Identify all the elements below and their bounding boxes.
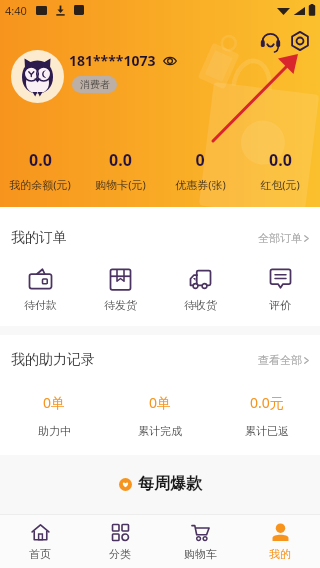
staticText: 分类 [109, 547, 131, 561]
staticText: 181****1073 [69, 51, 156, 70]
button[interactable]: 待付款 [0, 267, 80, 312]
staticText: 购物卡(元) [95, 177, 146, 192]
button[interactable]: 0.0 [240, 149, 320, 192]
staticText: 首页 [29, 547, 51, 561]
staticText: 我的余额(元) [9, 177, 71, 192]
staticText: 我的 [269, 547, 291, 561]
button[interactable]: 购物车 [160, 515, 240, 568]
button[interactable]: Toggle visibility [163, 54, 177, 68]
staticText: 累计完成 [138, 424, 182, 438]
staticText: 0.0 [109, 149, 132, 171]
staticText: 助力中 [38, 424, 71, 438]
staticText: 每周爆款 [138, 474, 202, 494]
button[interactable]: 分类 [80, 515, 160, 568]
button[interactable]: 0.0 [80, 149, 160, 192]
staticText: 0单 [149, 393, 172, 412]
staticText: 0单 [43, 393, 66, 412]
button[interactable]: 评价 [240, 267, 320, 312]
button[interactable]: Customer service [259, 30, 282, 53]
button[interactable]: 全部订单 [258, 231, 310, 245]
button[interactable]: 消费者 [72, 76, 117, 93]
button[interactable]: 待发货 [80, 267, 160, 312]
staticText: 累计已返 [245, 424, 289, 438]
staticText: 0.0元 [250, 393, 284, 412]
button[interactable]: 0单 [107, 393, 213, 438]
staticText: 0.0 [269, 149, 292, 171]
button[interactable]: Settings [288, 29, 312, 53]
staticText: 查看全部 [258, 353, 302, 367]
staticText: 全部订单 [258, 231, 302, 245]
button[interactable]: 首页 [0, 515, 80, 568]
staticText: 4:40 [5, 3, 27, 18]
button[interactable]: 0单 [1, 393, 107, 438]
staticText: 红包(元) [260, 177, 300, 192]
button[interactable]: 0 [160, 149, 240, 192]
staticText: 待付款 [24, 298, 57, 312]
staticText: 优惠券(张) [175, 177, 226, 192]
staticText: 0 [195, 149, 205, 171]
staticText: 消费者 [80, 78, 110, 91]
button[interactable]: 每周爆款 [0, 469, 320, 499]
staticText: 我的订单 [11, 229, 67, 247]
button[interactable]: 0.0 [0, 149, 80, 192]
staticText: 待收货 [184, 298, 217, 312]
button[interactable]: 我的 [240, 515, 320, 568]
staticText: 评价 [269, 298, 291, 312]
staticText: 0.0 [29, 149, 52, 171]
button[interactable]: 查看全部 [258, 353, 310, 367]
staticText: 我的助力记录 [11, 351, 95, 369]
button[interactable]: 0.0元 [214, 393, 320, 438]
staticText: 待发货 [104, 298, 137, 312]
staticText: 购物车 [184, 547, 217, 561]
button[interactable]: 待收货 [160, 267, 240, 312]
